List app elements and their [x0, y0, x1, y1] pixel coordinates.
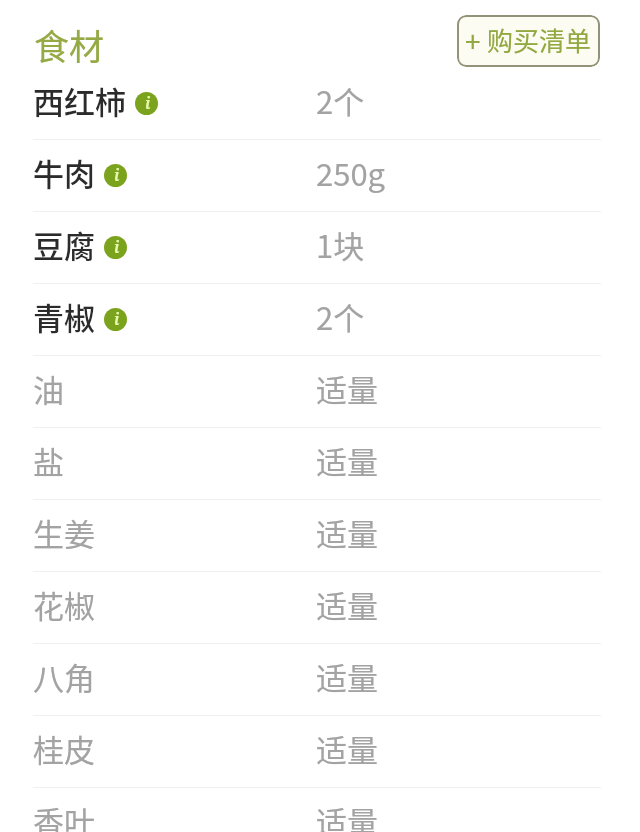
staticText: +	[465, 20, 481, 61]
staticText: 牛肉	[33, 150, 95, 195]
staticText: 花椒	[33, 582, 95, 627]
staticText: 生姜	[33, 510, 95, 555]
staticText: 盐	[33, 438, 64, 483]
staticText: 购买清单	[487, 21, 592, 59]
staticText: 香叶	[33, 798, 95, 832]
button[interactable]: 八角	[0, 644, 640, 716]
button[interactable]: 豆腐	[0, 212, 640, 284]
staticText: 油	[33, 366, 64, 411]
button[interactable]: Ingredient info	[135, 92, 158, 115]
button[interactable]: Ingredient info	[104, 164, 127, 187]
button[interactable]: 花椒	[0, 572, 640, 644]
staticText: 适量	[316, 798, 378, 832]
button[interactable]: 油	[0, 356, 640, 428]
button[interactable]: 青椒	[0, 284, 640, 356]
staticText: 适量	[316, 582, 378, 627]
button[interactable]: 桂皮	[0, 716, 640, 788]
staticText: 1块	[316, 222, 365, 267]
staticText: 适量	[316, 654, 378, 699]
staticText: 250g	[316, 150, 386, 195]
staticText: 适量	[316, 726, 378, 771]
staticText: i	[114, 164, 120, 186]
staticText: i	[145, 92, 151, 114]
staticText: 豆腐	[33, 222, 95, 267]
staticText: 食材	[34, 19, 105, 70]
staticText: 适量	[316, 510, 378, 555]
staticText: 2个	[316, 78, 365, 123]
staticText: i	[114, 236, 120, 258]
staticText: 适量	[316, 366, 378, 411]
button[interactable]: Ingredient info	[104, 308, 127, 331]
button[interactable]: 盐	[0, 428, 640, 500]
button[interactable]: 生姜	[0, 500, 640, 572]
staticText: 青椒	[33, 294, 95, 339]
staticText: 西红柿	[33, 78, 126, 123]
staticText: 八角	[33, 654, 95, 699]
staticText: 2个	[316, 294, 365, 339]
staticText: 桂皮	[33, 726, 95, 771]
staticText: i	[114, 308, 120, 330]
button[interactable]: 牛肉	[0, 140, 640, 212]
button[interactable]: 香叶	[0, 788, 640, 832]
button[interactable]: +	[457, 15, 600, 67]
button[interactable]: Ingredient info	[104, 236, 127, 259]
button[interactable]: 西红柿	[0, 68, 640, 140]
staticText: 适量	[316, 438, 378, 483]
